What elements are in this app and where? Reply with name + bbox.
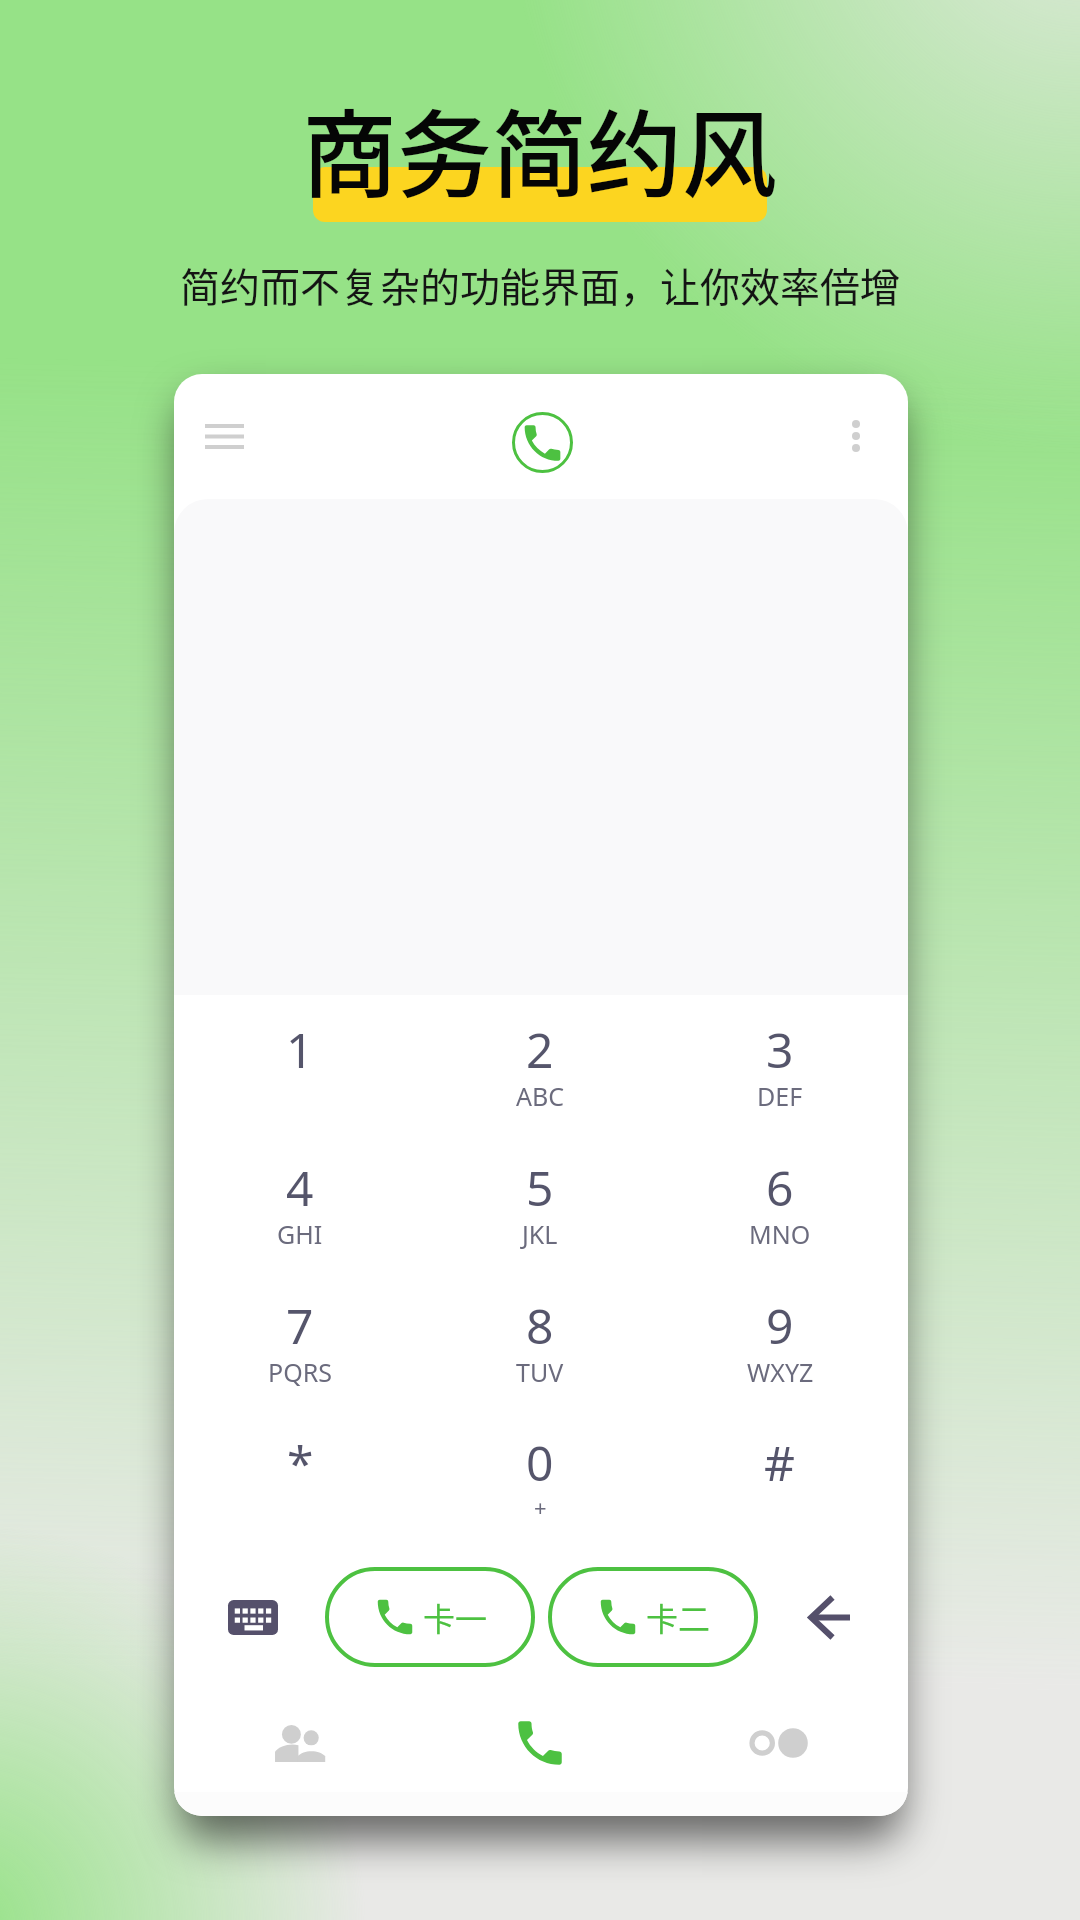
button[interactable]: 4	[180, 1155, 420, 1293]
staticText: *	[287, 1430, 314, 1495]
button[interactable]: 3	[660, 1017, 900, 1155]
staticText: 5	[526, 1155, 554, 1220]
button[interactable]: 卡一	[325, 1567, 535, 1667]
button[interactable]: Backspace	[785, 1573, 873, 1661]
staticText: 简约而不复杂的功能界面，让你效率倍增	[180, 256, 900, 314]
staticText: 6	[766, 1155, 794, 1220]
staticText: 卡二	[646, 1594, 711, 1640]
staticText: 卡一	[423, 1594, 488, 1640]
button[interactable]: 7	[180, 1293, 420, 1431]
staticText: 2	[526, 1017, 554, 1082]
staticText: JKL	[522, 1217, 558, 1251]
staticText: #	[764, 1430, 796, 1495]
staticText: 8	[526, 1293, 554, 1358]
staticText: 7	[286, 1293, 314, 1358]
button[interactable]: #	[660, 1430, 900, 1568]
staticText: 0	[526, 1430, 554, 1495]
button[interactable]: 2	[420, 1017, 660, 1155]
button[interactable]: 9	[660, 1293, 900, 1431]
staticText: 4	[286, 1155, 314, 1220]
button[interactable]: Keypad	[420, 1688, 660, 1798]
button[interactable]: Recents	[660, 1688, 900, 1798]
button[interactable]: Dialer	[506, 406, 578, 478]
staticText: WXYZ	[747, 1355, 814, 1389]
staticText: 商务简约风	[302, 80, 778, 218]
staticText: PQRS	[268, 1355, 332, 1389]
button[interactable]: 卡二	[548, 1567, 758, 1667]
staticText: ABC	[516, 1079, 565, 1113]
staticText: TUV	[516, 1355, 564, 1389]
button[interactable]: Keyboard	[209, 1573, 297, 1661]
staticText: 9	[766, 1293, 794, 1358]
staticText: 3	[766, 1017, 794, 1082]
button[interactable]: More options	[824, 404, 888, 468]
button[interactable]: *	[180, 1430, 420, 1568]
button[interactable]: 8	[420, 1293, 660, 1431]
button[interactable]: 6	[660, 1155, 900, 1293]
button[interactable]: Menu	[192, 404, 256, 468]
staticText: DEF	[757, 1079, 803, 1113]
button[interactable]: Contacts	[180, 1688, 420, 1798]
staticText: 1	[286, 1017, 314, 1082]
button[interactable]: 0	[420, 1430, 660, 1568]
button[interactable]: 5	[420, 1155, 660, 1293]
staticText: MNO	[749, 1217, 811, 1251]
staticText: +	[534, 1492, 547, 1522]
staticText: GHI	[277, 1217, 323, 1251]
button[interactable]: 1	[180, 1017, 420, 1155]
